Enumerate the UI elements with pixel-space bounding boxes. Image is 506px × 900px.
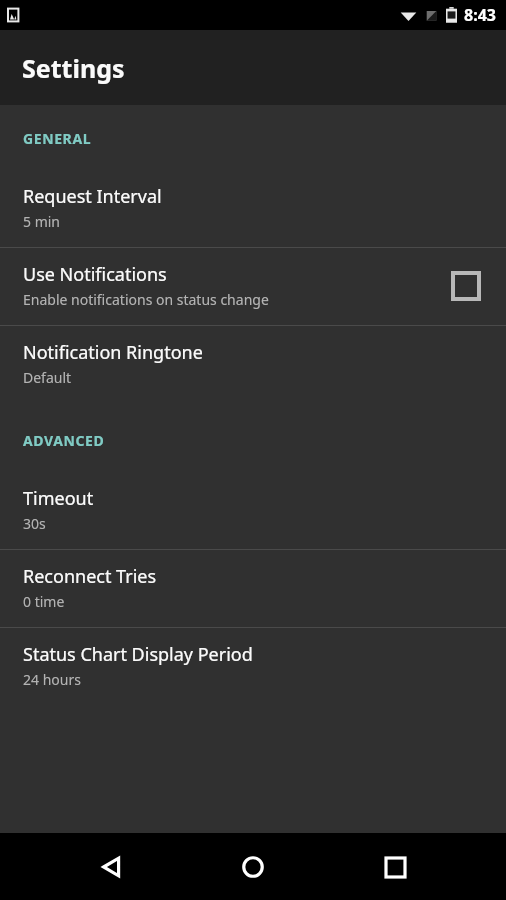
button[interactable]: Back: [82, 837, 142, 897]
staticText: Default: [23, 368, 72, 387]
button[interactable]: Timeout: [0, 472, 506, 549]
button[interactable]: Use Notifications: [0, 248, 506, 325]
button[interactable]: Home: [223, 837, 283, 897]
staticText: GENERAL: [23, 129, 92, 148]
button[interactable]: Notification Ringtone: [0, 326, 506, 403]
button[interactable]: Recent apps: [365, 837, 425, 897]
staticText: Reconnect Tries: [23, 564, 157, 589]
staticText: Notification Ringtone: [23, 340, 203, 365]
staticText: ADVANCED: [23, 431, 105, 450]
staticText: 24 hours: [23, 670, 81, 689]
staticText: Settings: [22, 51, 125, 85]
staticText: Timeout: [23, 486, 94, 511]
staticText: Use Notifications: [23, 262, 167, 287]
staticText: 5 min: [23, 212, 61, 231]
staticText: Status Chart Display Period: [23, 642, 253, 667]
staticText: 8:43: [464, 4, 496, 26]
button[interactable]: Use Notifications toggle: [446, 266, 486, 306]
button[interactable]: Status Chart Display Period: [0, 628, 506, 705]
button[interactable]: Request Interval: [0, 170, 506, 247]
button[interactable]: Reconnect Tries: [0, 550, 506, 627]
staticText: Request Interval: [23, 184, 162, 209]
staticText: 30s: [23, 514, 46, 533]
staticText: Enable notifications on status change: [23, 290, 269, 309]
staticText: 0 time: [23, 592, 65, 611]
